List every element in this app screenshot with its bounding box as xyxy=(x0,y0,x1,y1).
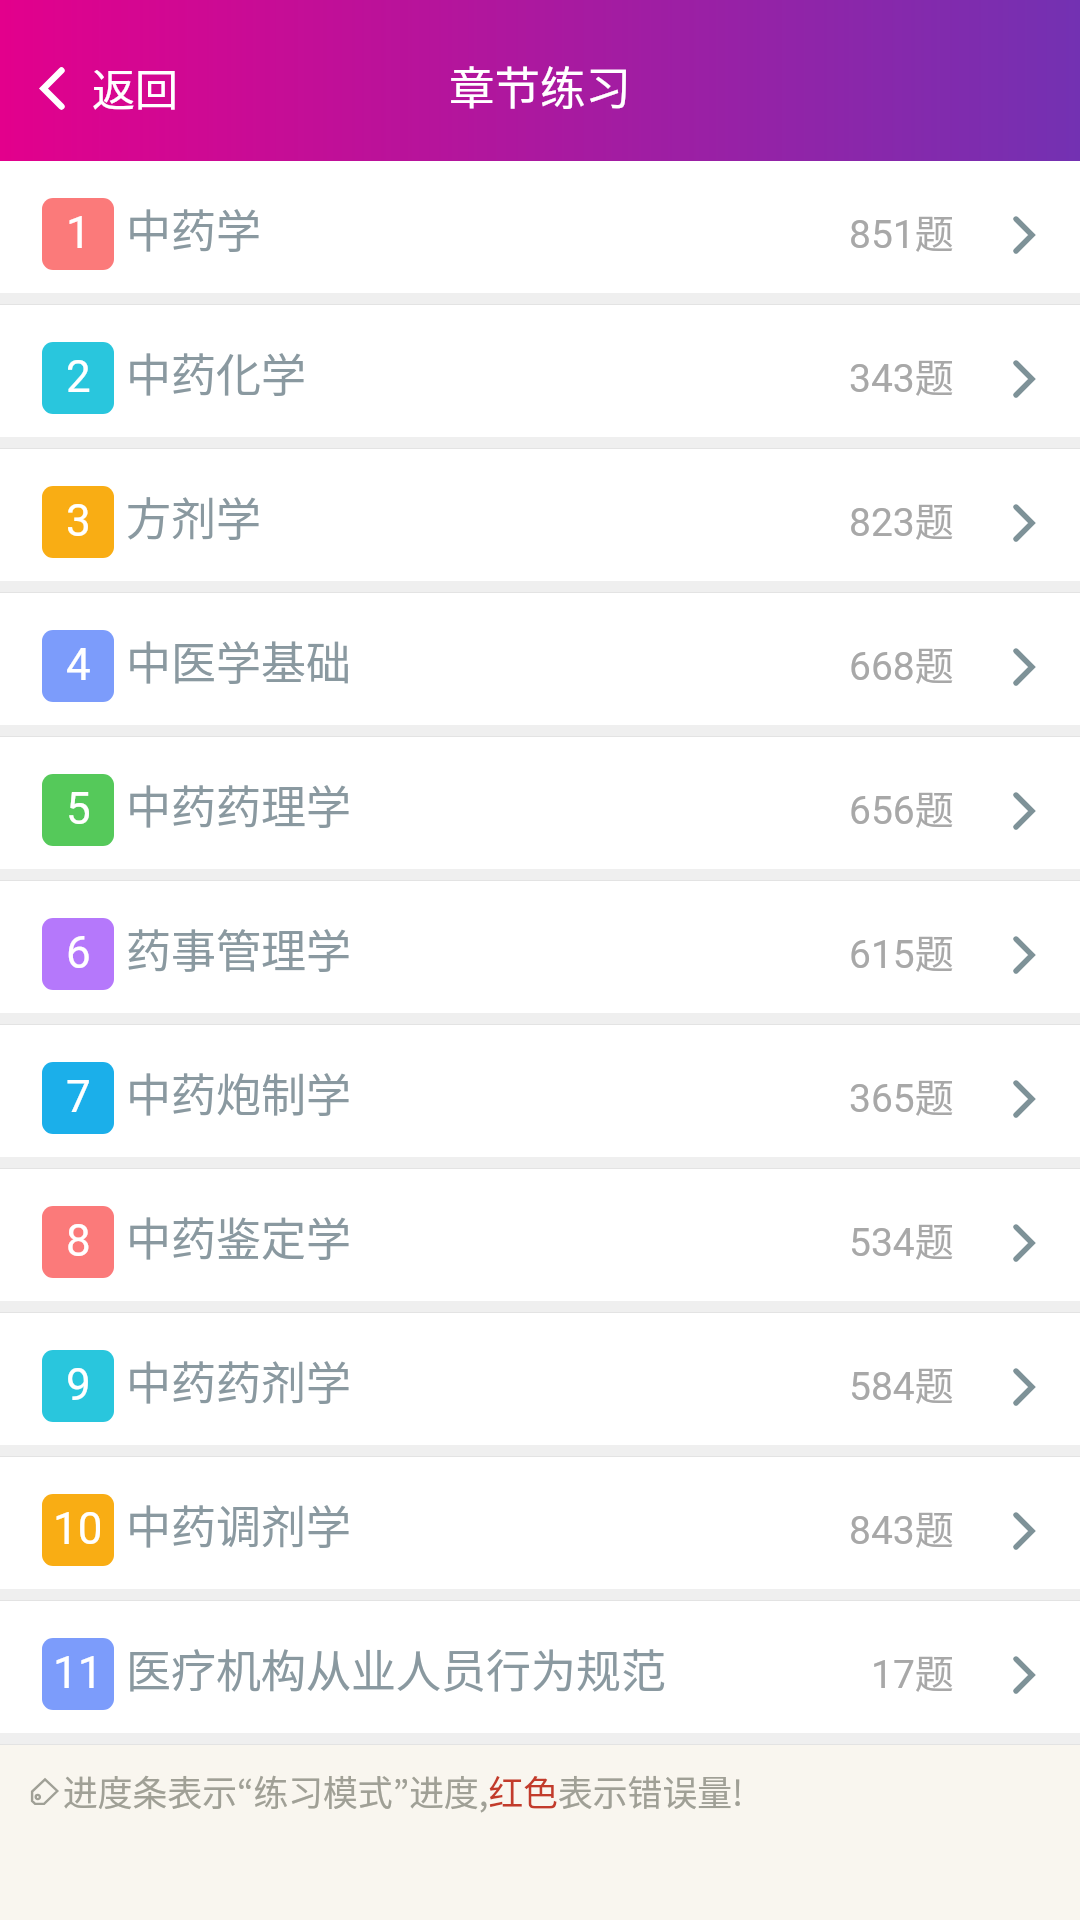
staticText: 进度条表示“练习模式”进度,红色表示错误量! xyxy=(63,1766,744,1816)
staticText: 中药调剂学 xyxy=(126,1492,352,1557)
staticText: 章节练习 xyxy=(449,52,632,118)
staticText: 8 xyxy=(66,1215,91,1267)
button[interactable]: 返回 xyxy=(0,44,204,130)
staticText: 3 xyxy=(66,495,91,547)
staticText: 534题 xyxy=(849,1211,954,1267)
staticText: 返回 xyxy=(92,56,178,118)
staticText: 中药炮制学 xyxy=(126,1060,352,1125)
button[interactable]: 4 xyxy=(0,593,1080,737)
button[interactable]: 9 xyxy=(0,1313,1080,1457)
staticText: 823题 xyxy=(849,491,954,547)
staticText: 343题 xyxy=(849,347,954,403)
staticText: 中医学基础 xyxy=(126,628,352,693)
button[interactable]: 1 xyxy=(0,161,1080,305)
staticText: 851题 xyxy=(849,203,954,259)
staticText: 中药药剂学 xyxy=(126,1348,352,1413)
staticText: 584题 xyxy=(849,1355,954,1411)
button[interactable]: 6 xyxy=(0,881,1080,1025)
button[interactable]: 8 xyxy=(0,1169,1080,1313)
button[interactable]: 7 xyxy=(0,1025,1080,1169)
staticText: 668题 xyxy=(849,635,954,691)
staticText: 843题 xyxy=(849,1499,954,1555)
staticText: 1 xyxy=(66,207,91,259)
staticText: 7 xyxy=(66,1071,91,1123)
staticText: 中药鉴定学 xyxy=(126,1204,352,1269)
staticText: 中药化学 xyxy=(126,340,307,405)
staticText: 2 xyxy=(66,351,91,403)
staticText: 615题 xyxy=(849,923,954,979)
other: 说明 xyxy=(30,1776,60,1806)
staticText: 中药药理学 xyxy=(126,772,352,837)
button[interactable]: 2 xyxy=(0,305,1080,449)
staticText: 9 xyxy=(66,1359,91,1411)
button[interactable]: 3 xyxy=(0,449,1080,593)
staticText: 6 xyxy=(66,927,91,979)
staticText: 11 xyxy=(53,1647,103,1699)
button[interactable]: 11 xyxy=(0,1601,1080,1745)
staticText: 方剂学 xyxy=(126,484,262,549)
button[interactable]: 5 xyxy=(0,737,1080,881)
staticText: 10 xyxy=(53,1503,103,1555)
staticText: 656题 xyxy=(849,779,954,835)
staticText: 17题 xyxy=(871,1643,954,1699)
button[interactable]: 10 xyxy=(0,1457,1080,1601)
staticText: 中药学 xyxy=(126,196,262,261)
staticText: 5 xyxy=(66,783,91,835)
staticText: 药事管理学 xyxy=(126,916,352,981)
staticText: 医疗机构从业人员行为规范 xyxy=(126,1636,667,1701)
staticText: 4 xyxy=(66,639,91,691)
staticText: 365题 xyxy=(849,1067,954,1123)
